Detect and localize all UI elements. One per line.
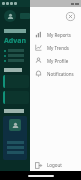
button[interactable] [3, 116, 27, 160]
button[interactable]: My Profile [30, 54, 81, 67]
staticText: My Profile [47, 58, 69, 64]
button[interactable]: My Reports [30, 28, 81, 41]
button[interactable]: My Trends [30, 41, 81, 54]
button[interactable]: Logout [30, 158, 81, 172]
staticText: My Reports [47, 32, 72, 38]
button[interactable] [3, 91, 29, 104]
staticText: Advan [4, 36, 27, 46]
button[interactable]: Notifications [30, 67, 81, 80]
staticText: My Trends [47, 45, 69, 51]
button[interactable] [3, 75, 29, 88]
staticText: Notifications [47, 71, 74, 77]
button[interactable]: Close menu [65, 11, 76, 22]
staticText: Logout [47, 162, 62, 168]
